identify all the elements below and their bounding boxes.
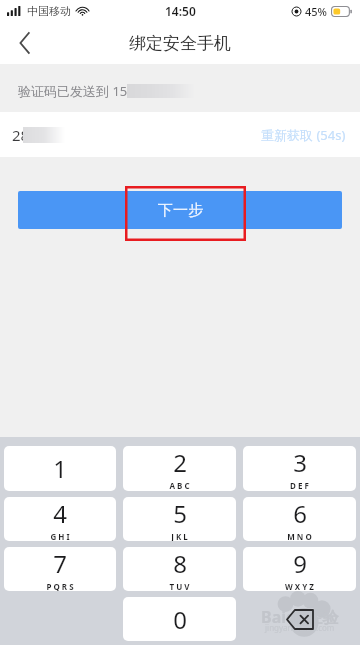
- staticText: 7: [53, 547, 67, 580]
- staticText: 5: [173, 497, 187, 530]
- staticText: J K L: [171, 531, 188, 541]
- staticText: 重新获取 (54s): [261, 126, 346, 144]
- button[interactable]: 9: [243, 547, 356, 591]
- button[interactable]: 5: [123, 497, 236, 541]
- staticText: P Q R S: [46, 581, 74, 591]
- staticText: 8: [173, 547, 187, 580]
- button[interactable]: 4: [4, 497, 116, 541]
- staticText: D E F: [290, 480, 309, 491]
- staticText: jingyan.baidu.com: [265, 622, 335, 633]
- staticText: 中国移动: [27, 4, 71, 18]
- button[interactable]: 8: [123, 547, 236, 591]
- staticText: 6: [293, 497, 307, 530]
- staticText: 45%: [305, 4, 327, 19]
- button[interactable]: 1: [4, 446, 116, 491]
- staticText: G H I: [50, 531, 70, 541]
- button[interactable]: Back: [0, 22, 50, 64]
- staticText: 3: [293, 446, 307, 479]
- button[interactable]: 7: [4, 547, 116, 591]
- staticText: 验证码已发送到 15: [18, 82, 128, 100]
- staticText: A B C: [169, 480, 190, 491]
- button[interactable]: 2: [123, 446, 236, 491]
- staticText: M N O: [287, 531, 312, 541]
- staticText: W X Y Z: [285, 581, 314, 591]
- staticText: 9: [293, 547, 307, 580]
- button[interactable]: 6: [243, 497, 356, 541]
- button[interactable]: Delete: [243, 597, 356, 641]
- staticText: 2: [173, 446, 187, 479]
- button[interactable]: 0: [123, 597, 236, 641]
- staticText: 绑定安全手机: [129, 33, 231, 54]
- staticText: T U V: [169, 581, 190, 591]
- staticText: 下一步: [158, 201, 203, 220]
- button[interactable]: 下一步: [18, 191, 342, 229]
- staticText: 28: [12, 125, 30, 145]
- staticText: 0: [173, 603, 187, 636]
- staticText: 4: [53, 497, 67, 530]
- button[interactable]: 3: [243, 446, 356, 491]
- staticText: 1: [53, 452, 67, 485]
- staticText: 14:50: [165, 3, 196, 19]
- button[interactable]: 重新获取 (54s): [247, 112, 360, 157]
- staticText: Baidu经验: [261, 606, 339, 628]
